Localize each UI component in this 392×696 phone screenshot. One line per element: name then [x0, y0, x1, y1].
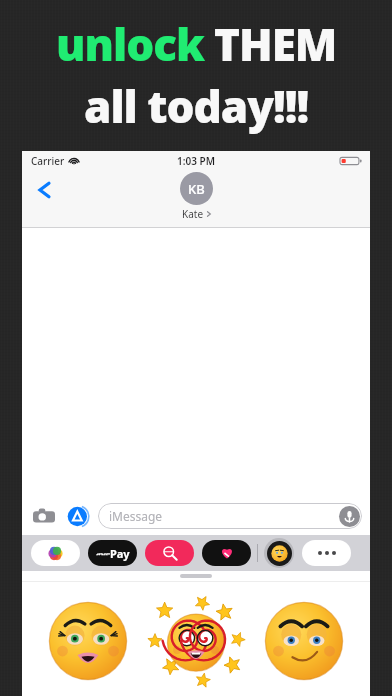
staticText: Pay — [96, 546, 130, 561]
staticText: KB — [188, 180, 205, 198]
button[interactable]: iMessage — [98, 503, 362, 529]
button[interactable]: Back — [28, 173, 62, 207]
button[interactable]: Dizzy emoji sticker — [154, 599, 238, 683]
button[interactable]: KB — [180, 172, 213, 221]
staticText: Carrier — [31, 154, 65, 168]
staticText: unlock — [56, 14, 204, 74]
button[interactable]: Images — [145, 540, 194, 566]
staticText: Kate — [182, 207, 204, 221]
other: Dictate — [339, 506, 360, 527]
staticText: THEM — [214, 14, 337, 74]
staticText: all today!!! — [84, 76, 309, 136]
button[interactable]: App Store — [64, 502, 92, 530]
staticText: 1:03 PM — [177, 154, 215, 168]
button[interactable]: Digital Touch — [202, 540, 251, 566]
button[interactable]: Flirty emoji sticker — [46, 599, 130, 683]
button[interactable]: Smiling emoji sticker — [262, 599, 346, 683]
button[interactable]: Camera — [30, 502, 58, 530]
button[interactable]: More apps — [302, 540, 351, 566]
button[interactable]: Apple Pay — [88, 540, 137, 566]
button[interactable]: Emoji stickers — [264, 538, 294, 568]
staticText: iMessage — [109, 508, 163, 524]
button[interactable]: Photos — [31, 540, 80, 566]
